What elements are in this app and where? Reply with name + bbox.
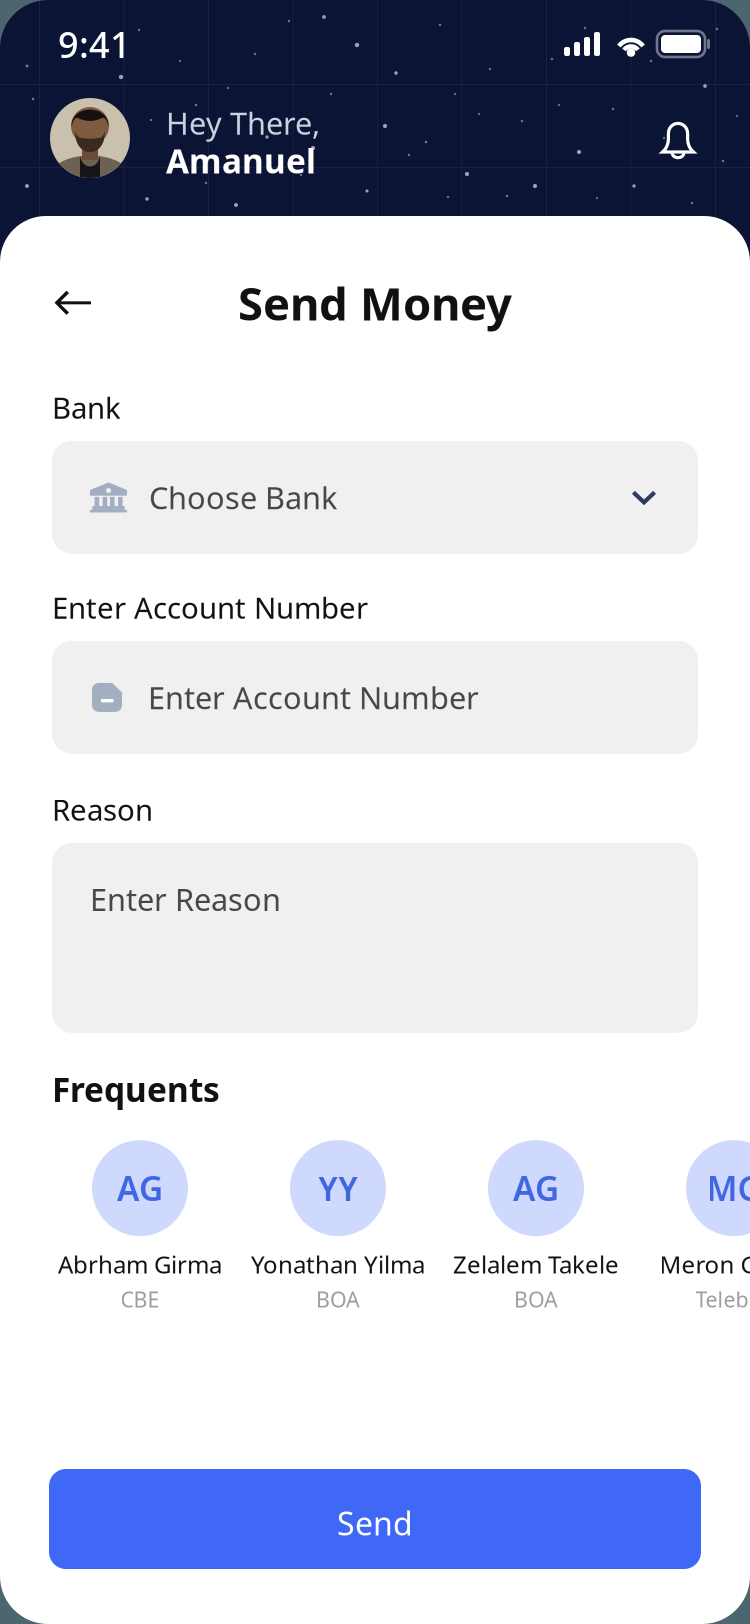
staticText: YY (318, 1166, 358, 1210)
staticText: Yonathan Yilma (251, 1248, 425, 1280)
staticText: Enter Account Number (148, 677, 479, 718)
staticText: Frequents (52, 1067, 220, 1111)
staticText: Meron Girma (659, 1248, 750, 1280)
staticText: MG (706, 1166, 750, 1210)
staticText: AG (513, 1166, 559, 1210)
staticText: BOA (316, 1285, 360, 1313)
staticText: Enter Account Number (52, 588, 368, 627)
staticText: CBE (120, 1285, 159, 1313)
staticText: 9:41 (58, 20, 131, 68)
staticText: Choose Bank (149, 477, 337, 518)
staticText: Send (337, 1502, 413, 1544)
button[interactable]: Send (49, 1469, 701, 1569)
button[interactable]: Notifications (642, 107, 704, 169)
button[interactable]: YY (239, 1140, 437, 1312)
button[interactable]: MG (635, 1140, 750, 1312)
button[interactable]: AG (41, 1140, 239, 1312)
staticText: Amanuel (166, 138, 316, 183)
staticText: Reason (52, 790, 153, 829)
button[interactable]: AG (437, 1140, 635, 1312)
staticText: BOA (514, 1285, 558, 1313)
staticText: AG (117, 1166, 163, 1210)
staticText: Hey There, (166, 102, 320, 143)
staticText: Telebirr (695, 1285, 750, 1313)
button[interactable]: Back (54, 272, 130, 334)
staticText: Bank (52, 388, 121, 427)
staticText: Abrham Girma (58, 1248, 222, 1280)
staticText: Enter Reason (90, 879, 281, 920)
staticText: Zelalem Takele (453, 1248, 619, 1280)
staticText: Send Money (238, 273, 512, 333)
